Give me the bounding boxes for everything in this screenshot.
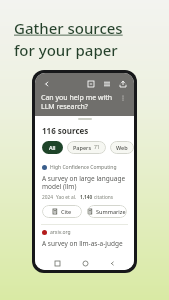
staticText: 2024 xyxy=(42,194,53,201)
button[interactable]: High Confidence Computing xyxy=(35,160,134,224)
staticText: Papers xyxy=(73,144,92,151)
staticText: 1,140 xyxy=(80,194,93,201)
staticText: arxiv.org xyxy=(50,229,71,236)
button[interactable]: List view xyxy=(101,78,112,89)
staticText: Web xyxy=(116,144,128,151)
staticText: citations xyxy=(94,194,114,201)
staticText: Yao et al. xyxy=(56,194,77,201)
button[interactable]: Summarize xyxy=(87,205,127,218)
staticText: All xyxy=(49,144,56,151)
staticText: High Confidence Computing xyxy=(50,164,117,171)
button[interactable]: Add note xyxy=(85,78,96,89)
button[interactable]: arxiv.org xyxy=(35,225,134,256)
staticText: for your paper xyxy=(14,40,118,60)
button[interactable]: Back xyxy=(41,78,52,89)
staticText: Gather sources xyxy=(14,18,123,38)
staticText: Cite xyxy=(61,208,72,215)
button[interactable]: Cite xyxy=(42,205,82,218)
button[interactable]: More options xyxy=(118,93,128,103)
button[interactable]: Back xyxy=(106,257,118,269)
button[interactable]: Home xyxy=(79,257,91,269)
button[interactable]: Web xyxy=(110,141,134,154)
staticText: Can you help me with LLM research? xyxy=(41,93,118,111)
staticText: 71 xyxy=(94,144,100,151)
button[interactable]: All xyxy=(42,141,63,154)
staticText: Summarize xyxy=(96,208,126,215)
staticText: A survey on large language model (llm) s… xyxy=(42,174,127,191)
button[interactable]: Recents xyxy=(51,257,63,269)
button[interactable]: Share xyxy=(117,78,128,89)
staticText: A survey on llm-as-a-judge xyxy=(42,239,123,248)
button[interactable]: Papers xyxy=(67,141,106,154)
staticText: 116 sources xyxy=(42,125,89,136)
